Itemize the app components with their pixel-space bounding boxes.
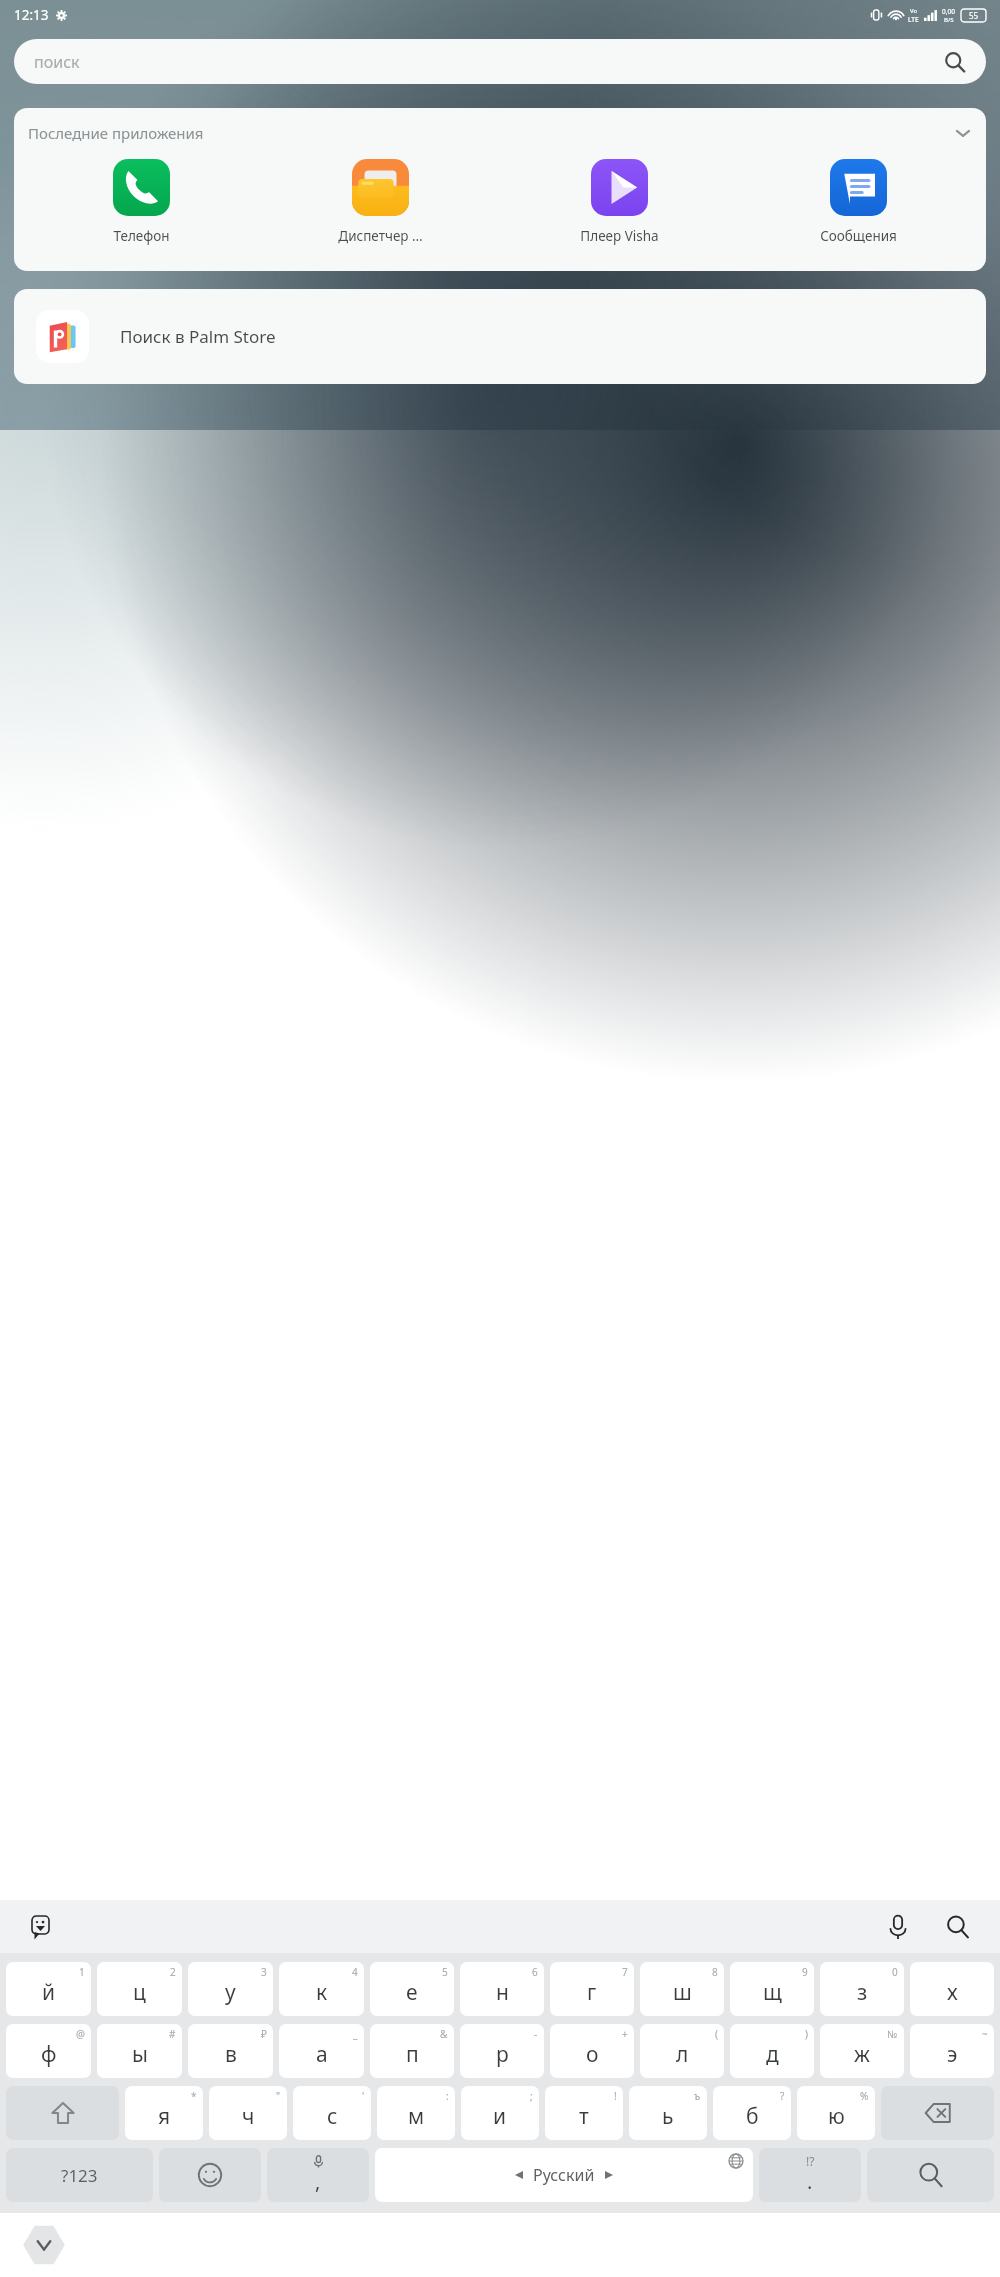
button[interactable]: : (377, 2086, 455, 2140)
button[interactable]: ₽ (188, 2024, 273, 2078)
staticText: ч (242, 2102, 255, 2131)
staticText: ! (614, 2089, 617, 2103)
button[interactable]: !? (759, 2148, 861, 2202)
staticText: ж (854, 2040, 870, 2069)
staticText: @ (76, 2027, 85, 2041)
staticText: я (158, 2102, 171, 2131)
button[interactable]: ! (545, 2086, 623, 2140)
staticText: ( (715, 2027, 718, 2041)
staticText: ю (828, 2102, 845, 2131)
staticText: ? (780, 2089, 785, 2103)
staticText: м (408, 2102, 425, 2131)
button[interactable]: 0 (820, 1962, 904, 2016)
button[interactable]: Shift (6, 2086, 119, 2140)
button[interactable]: Телефон (22, 159, 261, 245)
button[interactable]: Backspace (881, 2086, 994, 2140)
staticText: ш (673, 1978, 692, 2007)
staticText: ; (530, 2089, 533, 2103)
staticText: * (191, 2089, 197, 2103)
staticText: щ (763, 1978, 782, 2007)
staticText: 55 (969, 10, 979, 21)
button[interactable]: Search (938, 1907, 978, 1947)
button[interactable]: " (209, 2086, 287, 2140)
button[interactable]: х (910, 1962, 994, 2016)
button[interactable]: 9 (730, 1962, 814, 2016)
staticText: 4 (352, 1965, 358, 1979)
staticText: б (746, 2102, 759, 2131)
staticText: Диспетчер … (338, 227, 423, 245)
button[interactable]: 5 (370, 1962, 454, 2016)
button[interactable]: _ (279, 2024, 364, 2078)
staticText: ~ (982, 2027, 988, 2041)
staticText: . (807, 2168, 813, 2195)
button[interactable]: % (797, 2086, 875, 2140)
staticText: о (586, 2040, 599, 2069)
button[interactable]: поиск (14, 39, 986, 84)
button[interactable]: 8 (640, 1962, 724, 2016)
staticText: Поиск в Palm Store (120, 325, 276, 348)
staticText: з (857, 1978, 868, 2007)
button[interactable]: * (125, 2086, 203, 2140)
button[interactable]: + (550, 2024, 634, 2078)
button[interactable]: 1 (6, 1962, 91, 2016)
staticText: Плеер Visha (580, 227, 659, 245)
staticText: - (534, 2027, 538, 2041)
button[interactable]: Последние приложения (14, 108, 986, 147)
staticText: & (440, 2027, 448, 2041)
button[interactable]: 3 (188, 1962, 273, 2016)
button[interactable]: Voice input (878, 1907, 918, 1947)
staticText: 2 (170, 1965, 176, 1979)
button[interactable]: ъ (629, 2086, 707, 2140)
staticText: п (406, 2040, 419, 2069)
staticText: и (493, 2102, 507, 2131)
button[interactable]: Плеер Visha (500, 159, 739, 245)
button[interactable]: Русский (375, 2148, 753, 2202)
button[interactable]: Emoji (159, 2148, 261, 2202)
button[interactable]: 7 (550, 1962, 634, 2016)
staticText: т (579, 2102, 589, 2131)
staticText: 3 (261, 1965, 267, 1979)
staticText: 0,00 (942, 7, 955, 16)
staticText: , (315, 2168, 321, 2195)
staticText: Русский (533, 2164, 595, 2186)
button[interactable]: № (820, 2024, 904, 2078)
staticText: 5 (442, 1965, 448, 1979)
staticText: !? (806, 2153, 815, 2169)
staticText: 1 (79, 1965, 85, 1979)
staticText: поиск (34, 51, 80, 73)
button[interactable]: , (267, 2148, 369, 2202)
staticText: B/S (944, 16, 954, 24)
other: Collapse (954, 124, 972, 142)
button[interactable]: ? (713, 2086, 791, 2140)
other: Search (944, 51, 966, 73)
button[interactable]: Hide keyboard (18, 2222, 70, 2268)
button[interactable]: ( (640, 2024, 724, 2078)
staticText: ) (805, 2027, 808, 2041)
button[interactable]: Поиск в Palm Store (14, 289, 986, 384)
button[interactable]: ' (293, 2086, 371, 2140)
button[interactable]: # (97, 2024, 182, 2078)
staticText: LTE (908, 15, 919, 24)
staticText: № (887, 2027, 898, 2041)
staticText: в (225, 2040, 237, 2069)
staticText: д (766, 2040, 779, 2069)
button[interactable]: ) (730, 2024, 814, 2078)
button[interactable]: & (370, 2024, 454, 2078)
button[interactable]: ~ (910, 2024, 994, 2078)
button[interactable]: 4 (279, 1962, 364, 2016)
button[interactable]: - (460, 2024, 544, 2078)
button[interactable]: ; (461, 2086, 539, 2140)
staticText: 6 (532, 1965, 538, 1979)
button[interactable]: Диспетчер … (261, 159, 500, 245)
staticText: Последние приложения (28, 123, 204, 143)
staticText: ъ (694, 2089, 701, 2103)
button[interactable]: Stickers (22, 1909, 58, 1945)
button[interactable]: ?123 (6, 2148, 153, 2202)
button[interactable]: @ (6, 2024, 91, 2078)
button[interactable]: Search (867, 2148, 994, 2202)
button[interactable]: 6 (460, 1962, 544, 2016)
staticText: ц (133, 1978, 146, 2007)
button[interactable]: 2 (97, 1962, 182, 2016)
staticText: ₽ (261, 2027, 267, 2041)
button[interactable]: Сообщения (739, 159, 978, 245)
